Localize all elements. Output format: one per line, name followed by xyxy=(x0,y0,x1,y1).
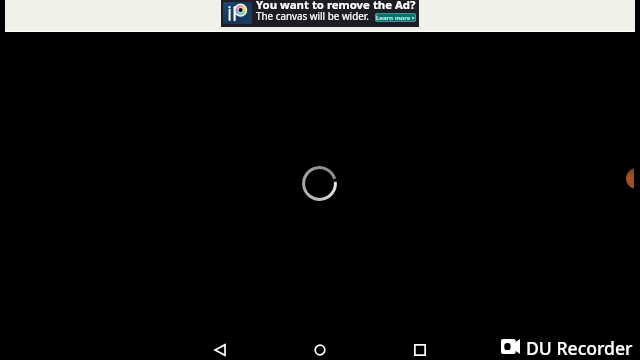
staticText: DU Recorder xyxy=(526,336,633,360)
button[interactable]: Record xyxy=(624,166,634,191)
button[interactable]: Home xyxy=(300,336,340,360)
staticText: Learn more xyxy=(376,14,411,22)
button[interactable]: You want to remove the Ad? xyxy=(221,0,419,27)
button[interactable]: Recent apps xyxy=(400,336,440,360)
button[interactable]: Back xyxy=(200,336,240,360)
staticText: You want to remove the Ad? xyxy=(256,0,416,13)
button[interactable]: Learn more xyxy=(375,13,416,22)
staticText: The canvas will be wider. xyxy=(256,9,369,22)
